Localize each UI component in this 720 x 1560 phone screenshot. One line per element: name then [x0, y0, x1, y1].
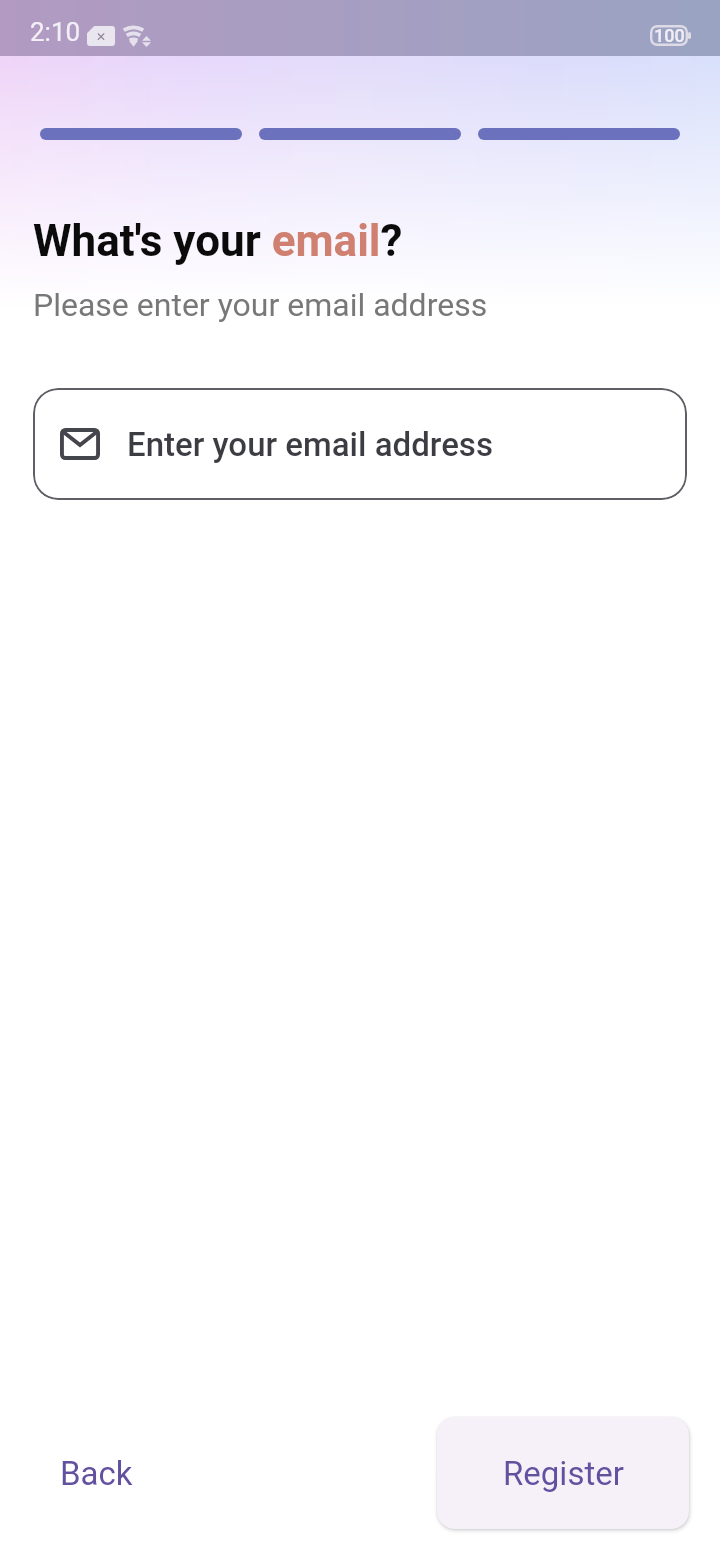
- button[interactable]: Step 3: [478, 128, 680, 140]
- button[interactable]: Register: [437, 1417, 689, 1529]
- staticText: 2:10: [30, 17, 81, 47]
- button[interactable]: Step 2: [259, 128, 461, 140]
- button[interactable]: Back: [36, 1438, 157, 1509]
- staticText: 100: [654, 25, 685, 46]
- staticText: ✕: [96, 30, 107, 44]
- staticText: What's your email?: [33, 215, 403, 267]
- button[interactable]: Enter your email address: [33, 388, 687, 500]
- staticText: Enter your email address: [127, 425, 493, 464]
- staticText: Back: [60, 1454, 133, 1493]
- staticText: Please enter your email address: [33, 286, 488, 324]
- staticText: Register: [503, 1454, 624, 1493]
- button[interactable]: Step 1: [40, 128, 242, 140]
